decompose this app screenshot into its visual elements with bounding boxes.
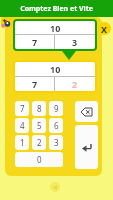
staticText: 4 — [20, 120, 25, 131]
button[interactable]: 3 — [49, 135, 63, 150]
button[interactable]: 6 — [49, 118, 63, 133]
button[interactable]: 4 — [15, 118, 29, 133]
staticText: 6 — [54, 120, 59, 131]
staticText: 9 — [54, 103, 59, 114]
button[interactable]: 1 — [15, 135, 29, 150]
staticText: 2 — [72, 78, 78, 90]
button[interactable]: Back — [50, 182, 60, 192]
staticText: 10 — [50, 63, 61, 75]
button[interactable]: 10 — [15, 21, 95, 49]
staticText: 7 — [32, 36, 38, 48]
button[interactable]: 2 — [32, 135, 46, 150]
button[interactable]: Profile — [1, 17, 12, 28]
staticText: 0 — [37, 154, 42, 165]
button[interactable]: Enter — [75, 125, 98, 169]
staticText: 3 — [54, 137, 59, 148]
button[interactable]: Close — [98, 22, 111, 35]
button[interactable]: 8 — [32, 101, 46, 116]
staticText: Comptez Bien et Vite — [20, 4, 93, 14]
staticText: 1 — [20, 137, 25, 148]
button[interactable]: 9 — [49, 101, 63, 116]
button[interactable]: 0 — [15, 152, 63, 167]
button[interactable]: 10 — [15, 62, 95, 91]
staticText: 5 — [37, 120, 42, 131]
staticText: 7 — [20, 103, 25, 114]
button[interactable]: 7 — [15, 101, 29, 116]
staticText: 10 — [50, 22, 61, 34]
staticText: 3 — [72, 36, 78, 48]
staticText: 7 — [32, 78, 38, 90]
staticText: 8 — [37, 103, 42, 114]
staticText: X — [101, 23, 108, 35]
staticText: 2 — [37, 137, 42, 148]
button[interactable]: 5 — [32, 118, 46, 133]
button[interactable]: Backspace — [75, 101, 98, 122]
